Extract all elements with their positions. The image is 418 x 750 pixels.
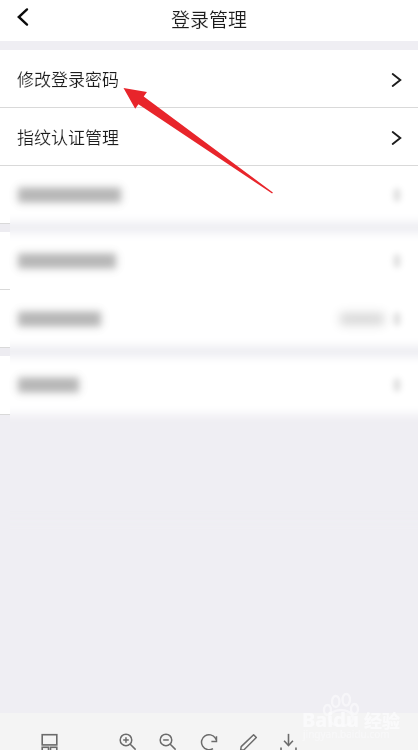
staticText: 指纹认证管理: [17, 124, 119, 149]
button[interactable]: 修改登录密码: [0, 50, 418, 107]
button[interactable]: Hidden account rows: [10, 177, 418, 442]
button[interactable]: Back: [0, 0, 44, 41]
button[interactable]: Rotate: [195, 727, 223, 750]
button[interactable]: 指纹认证管理: [0, 108, 418, 165]
button[interactable]: Zoom in: [113, 727, 141, 750]
button[interactable]: Download: [274, 727, 302, 750]
button[interactable]: Thumbnails: [35, 727, 63, 750]
staticText: 登录管理: [171, 5, 248, 33]
button[interactable]: Edit: [234, 727, 262, 750]
staticText: 修改登录密码: [17, 66, 119, 91]
button[interactable]: Zoom out: [153, 727, 181, 750]
staticText: 经验: [364, 707, 400, 733]
staticText: Baidu: [302, 706, 359, 733]
